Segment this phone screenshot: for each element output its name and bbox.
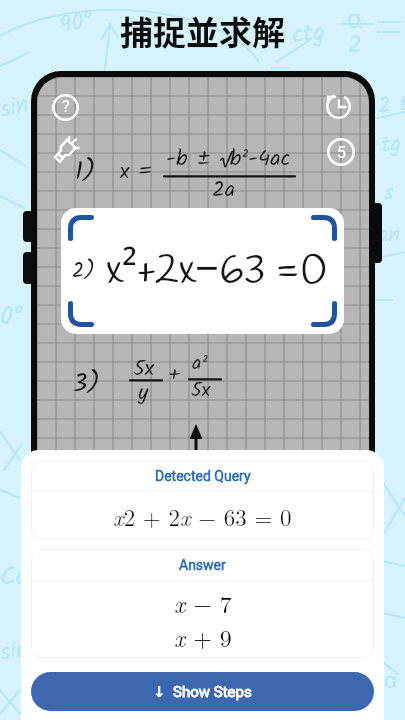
staticText: sin <box>0 630 31 672</box>
staticText: 捕捉並求解 <box>120 7 285 55</box>
staticText: 0° <box>0 296 22 337</box>
staticText: y <box>138 376 149 411</box>
staticText: 3) <box>73 364 100 404</box>
button[interactable]: Help <box>52 94 79 121</box>
staticText: 1) <box>75 152 96 192</box>
staticText: 5x <box>133 352 155 387</box>
staticText: 2 <box>348 26 362 64</box>
staticText: Detected Query <box>155 468 251 484</box>
staticText: 2) <box>72 255 95 288</box>
button[interactable]: ↓ Show Steps <box>31 672 374 711</box>
staticText: an <box>378 218 401 253</box>
staticText: x = <box>120 155 153 190</box>
staticText: 5 <box>337 143 346 162</box>
staticText: ↓ Show Steps <box>153 683 252 701</box>
button[interactable]: Remaining credits <box>327 138 355 166</box>
staticText: x − 7 <box>174 586 232 620</box>
staticText: s <box>384 176 394 211</box>
staticText: tg <box>381 127 402 164</box>
staticText: 2a <box>212 173 236 208</box>
staticText: ? <box>62 97 70 116</box>
staticText: α <box>344 0 364 36</box>
staticText: sin <box>0 85 33 129</box>
staticText: α <box>384 664 398 694</box>
button[interactable]: Flashlight <box>51 137 80 166</box>
staticText: x²+2x−63 =0 <box>106 238 328 300</box>
staticText: 5x <box>191 375 211 407</box>
staticText: ctg <box>290 13 327 55</box>
staticText: 90° <box>57 1 95 44</box>
staticText: x2 + 2x − 63 = 0 <box>113 500 292 533</box>
button[interactable]: History <box>324 92 353 121</box>
staticText: -b ± √b²-4ac <box>166 142 291 177</box>
staticText: 2 tg <box>376 86 405 125</box>
staticText: Co <box>0 556 28 597</box>
staticText: + <box>168 360 180 392</box>
button[interactable]: Detected Query <box>31 460 374 540</box>
staticText: a² <box>192 348 208 380</box>
staticText: Answer <box>179 557 226 573</box>
button[interactable]: Answer <box>31 549 374 658</box>
staticText: x + 9 <box>174 620 232 654</box>
